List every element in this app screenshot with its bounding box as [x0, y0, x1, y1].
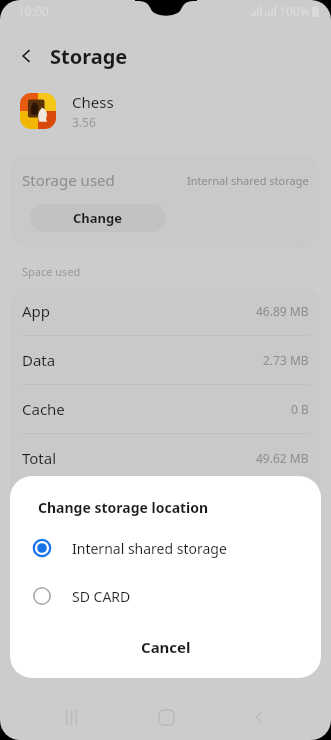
button[interactable]: SD CARD [10, 579, 321, 613]
staticText: App [22, 301, 51, 321]
staticText: Chess [72, 92, 114, 112]
staticText: 0 B [291, 401, 309, 417]
staticText: Storage used [22, 170, 115, 190]
staticText: 46.89 MB [256, 303, 309, 319]
staticText: Internal shared storage [187, 173, 309, 188]
staticText: Change storage location [38, 498, 209, 517]
button[interactable]: Back [10, 39, 44, 73]
button[interactable]: Internal shared storage [10, 531, 321, 565]
button[interactable]: Cancel [10, 626, 321, 668]
staticText: Space used [22, 264, 81, 279]
staticText: 49.62 MB [256, 450, 309, 466]
button[interactable]: Cache [10, 385, 321, 434]
button[interactable]: App [10, 287, 321, 336]
button[interactable]: Change [30, 204, 166, 232]
staticText: Total [22, 448, 57, 468]
staticText: Clear data [22, 497, 90, 516]
staticText: 2.73 MB [263, 352, 309, 368]
staticText: Cache [22, 399, 65, 419]
staticText: Change [73, 209, 123, 227]
button[interactable]: Clear data [10, 482, 321, 530]
staticText: Data [22, 350, 56, 370]
staticText: Internal shared storage [72, 539, 227, 558]
button[interactable]: Total [10, 434, 321, 482]
button[interactable]: Data [10, 336, 321, 385]
staticText: 10:00 [18, 3, 49, 19]
staticText: Storage [50, 43, 128, 70]
staticText: Cancel [141, 637, 191, 657]
staticText: SD CARD [72, 587, 131, 606]
staticText: 3.56 [72, 114, 96, 130]
staticText: 100% [279, 3, 310, 19]
